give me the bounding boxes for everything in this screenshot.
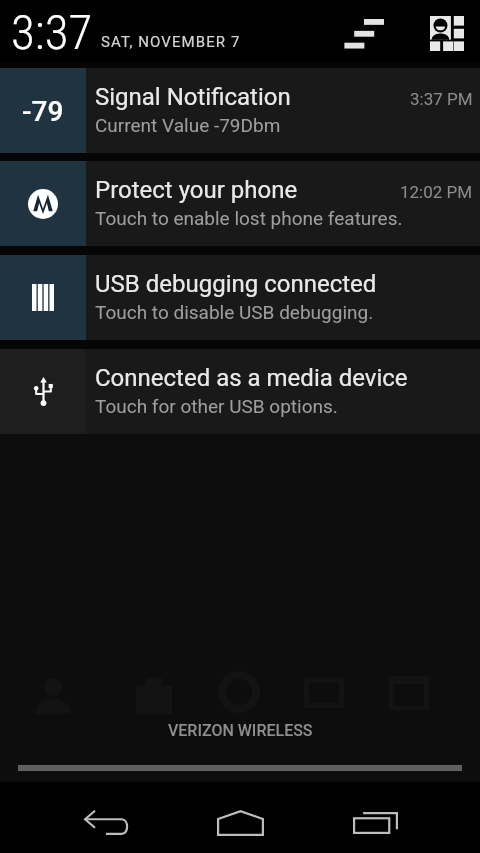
staticText: -79 — [22, 95, 64, 128]
button[interactable]: Quick settings — [418, 0, 468, 63]
button[interactable]: Clear all notifications — [362, 0, 418, 63]
button[interactable]: Connected as a media device — [0, 349, 480, 434]
staticText: Touch for other USB options. — [95, 395, 338, 417]
button[interactable]: Protect your phone — [0, 161, 480, 246]
staticText: Current Value -79Dbm — [95, 114, 281, 136]
button[interactable]: Recent apps — [320, 782, 480, 853]
staticText: Signal Notification — [95, 83, 291, 111]
staticText: Protect your phone — [95, 176, 298, 204]
staticText: Touch to enable lost phone features. — [95, 207, 403, 229]
button[interactable]: -79 — [0, 68, 480, 153]
staticText: Touch to disable USB debugging. — [95, 301, 374, 323]
staticText: 3:37 — [11, 4, 93, 61]
staticText: 12:02 PM — [400, 182, 473, 202]
staticText: Connected as a media device — [95, 364, 408, 392]
staticText: 3:37 PM — [410, 89, 473, 109]
button[interactable]: Home — [160, 782, 320, 853]
staticText: SAT, NOVEMBER 7 — [101, 33, 241, 51]
staticText: USB debugging connected — [95, 270, 377, 298]
button[interactable]: Back — [0, 782, 160, 853]
button[interactable]: USB debugging connected — [0, 255, 480, 340]
staticText: VERIZON WIRELESS — [168, 721, 313, 740]
